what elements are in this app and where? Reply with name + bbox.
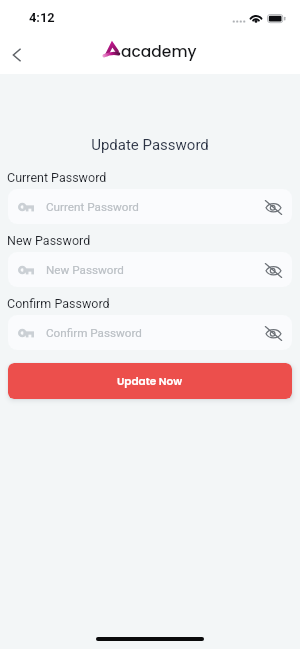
- staticText: Confirm Password: [7, 296, 110, 311]
- button[interactable]: Show password: [264, 324, 282, 342]
- staticText: 4:12: [29, 10, 55, 25]
- staticText: Update Now: [117, 374, 183, 389]
- staticText: Update Password: [0, 136, 300, 154]
- staticText: New Password: [46, 263, 124, 277]
- button[interactable]: Update Now: [8, 363, 292, 399]
- staticText: Confirm Password: [46, 326, 142, 340]
- button[interactable]: Current Password: [8, 189, 292, 224]
- staticText: New Password: [7, 233, 91, 248]
- button[interactable]: Show password: [264, 198, 282, 216]
- staticText: academy: [121, 41, 197, 63]
- button[interactable]: Confirm Password: [8, 315, 292, 350]
- button[interactable]: Back: [1, 39, 33, 71]
- staticText: Current Password: [7, 170, 107, 185]
- staticText: Current Password: [46, 200, 139, 214]
- button[interactable]: Show password: [264, 261, 282, 279]
- button[interactable]: New Password: [8, 252, 292, 287]
